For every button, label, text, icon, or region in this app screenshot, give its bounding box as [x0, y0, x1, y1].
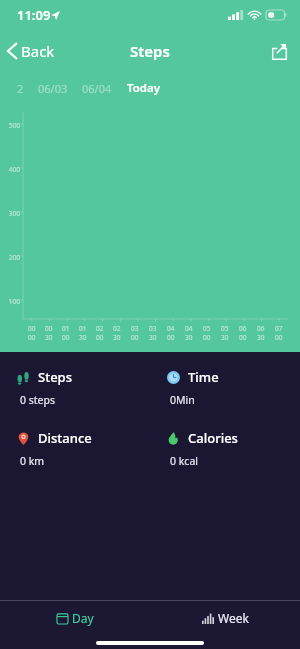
staticText: 00 [167, 333, 175, 342]
staticText: 02 [96, 324, 104, 333]
staticText: 00 [96, 333, 104, 342]
button[interactable]: Today [119, 76, 169, 100]
staticText: Today [127, 80, 161, 96]
staticText: 00 [131, 333, 139, 342]
button[interactable]: 06/03 [31, 77, 75, 100]
staticText: 00 [62, 333, 70, 342]
staticText: 2 [17, 81, 24, 96]
staticText: Time [188, 368, 219, 386]
staticText: 02 [113, 324, 121, 333]
staticText: 04 [185, 324, 193, 333]
button[interactable]: Day [0, 601, 150, 637]
staticText: 07 [275, 324, 283, 333]
staticText: 30 [221, 333, 229, 342]
staticText: 500 [4, 121, 20, 130]
staticText: 06/03 [38, 81, 68, 96]
staticText: 06 [257, 324, 265, 333]
staticText: 01 [62, 324, 70, 333]
button[interactable]: Distance [0, 425, 150, 472]
staticText: Steps [130, 41, 170, 61]
staticText: 03 [131, 324, 139, 333]
staticText: Week [218, 610, 249, 626]
staticText: 06/04 [82, 81, 112, 96]
button[interactable]: Steps [0, 364, 150, 411]
staticText: 04 [167, 324, 175, 333]
staticText: 0Min [170, 393, 195, 407]
staticText: Day [72, 610, 94, 626]
staticText: 01 [79, 324, 87, 333]
button[interactable]: Back [0, 30, 65, 72]
staticText: 06 [239, 324, 247, 333]
staticText: Back [21, 41, 55, 61]
staticText: 00 [45, 324, 53, 333]
staticText: 05 [203, 324, 211, 333]
staticText: 00 [28, 324, 36, 333]
staticText: 30 [185, 333, 193, 342]
staticText: 30 [113, 333, 121, 342]
staticText: 30 [257, 333, 265, 342]
staticText: 00 [28, 333, 36, 342]
button[interactable]: Week [150, 601, 300, 637]
staticText: 30 [79, 333, 87, 342]
staticText: 30 [149, 333, 157, 342]
staticText: 100 [4, 297, 20, 306]
staticText: 0 km [20, 454, 45, 468]
staticText: 05 [221, 324, 229, 333]
staticText: 00 [203, 333, 211, 342]
button[interactable]: Calories [150, 425, 300, 472]
staticText: 11:09 [17, 6, 51, 24]
button[interactable]: 06/04 [75, 77, 119, 100]
staticText: 00 [275, 333, 283, 342]
staticText: Steps [38, 368, 72, 386]
staticText: 00 [239, 333, 247, 342]
staticText: 0 steps [20, 393, 55, 407]
staticText: 30 [45, 333, 53, 342]
button[interactable]: 2 [10, 77, 31, 100]
staticText: 300 [4, 209, 20, 218]
staticText: Distance [38, 429, 92, 447]
staticText: 400 [4, 165, 20, 174]
staticText: 200 [4, 253, 20, 262]
button[interactable]: Time [150, 364, 300, 411]
button[interactable]: Share [258, 30, 300, 72]
staticText: 0 kcal [170, 454, 198, 468]
staticText: 03 [149, 324, 157, 333]
staticText: Calories [188, 429, 238, 447]
